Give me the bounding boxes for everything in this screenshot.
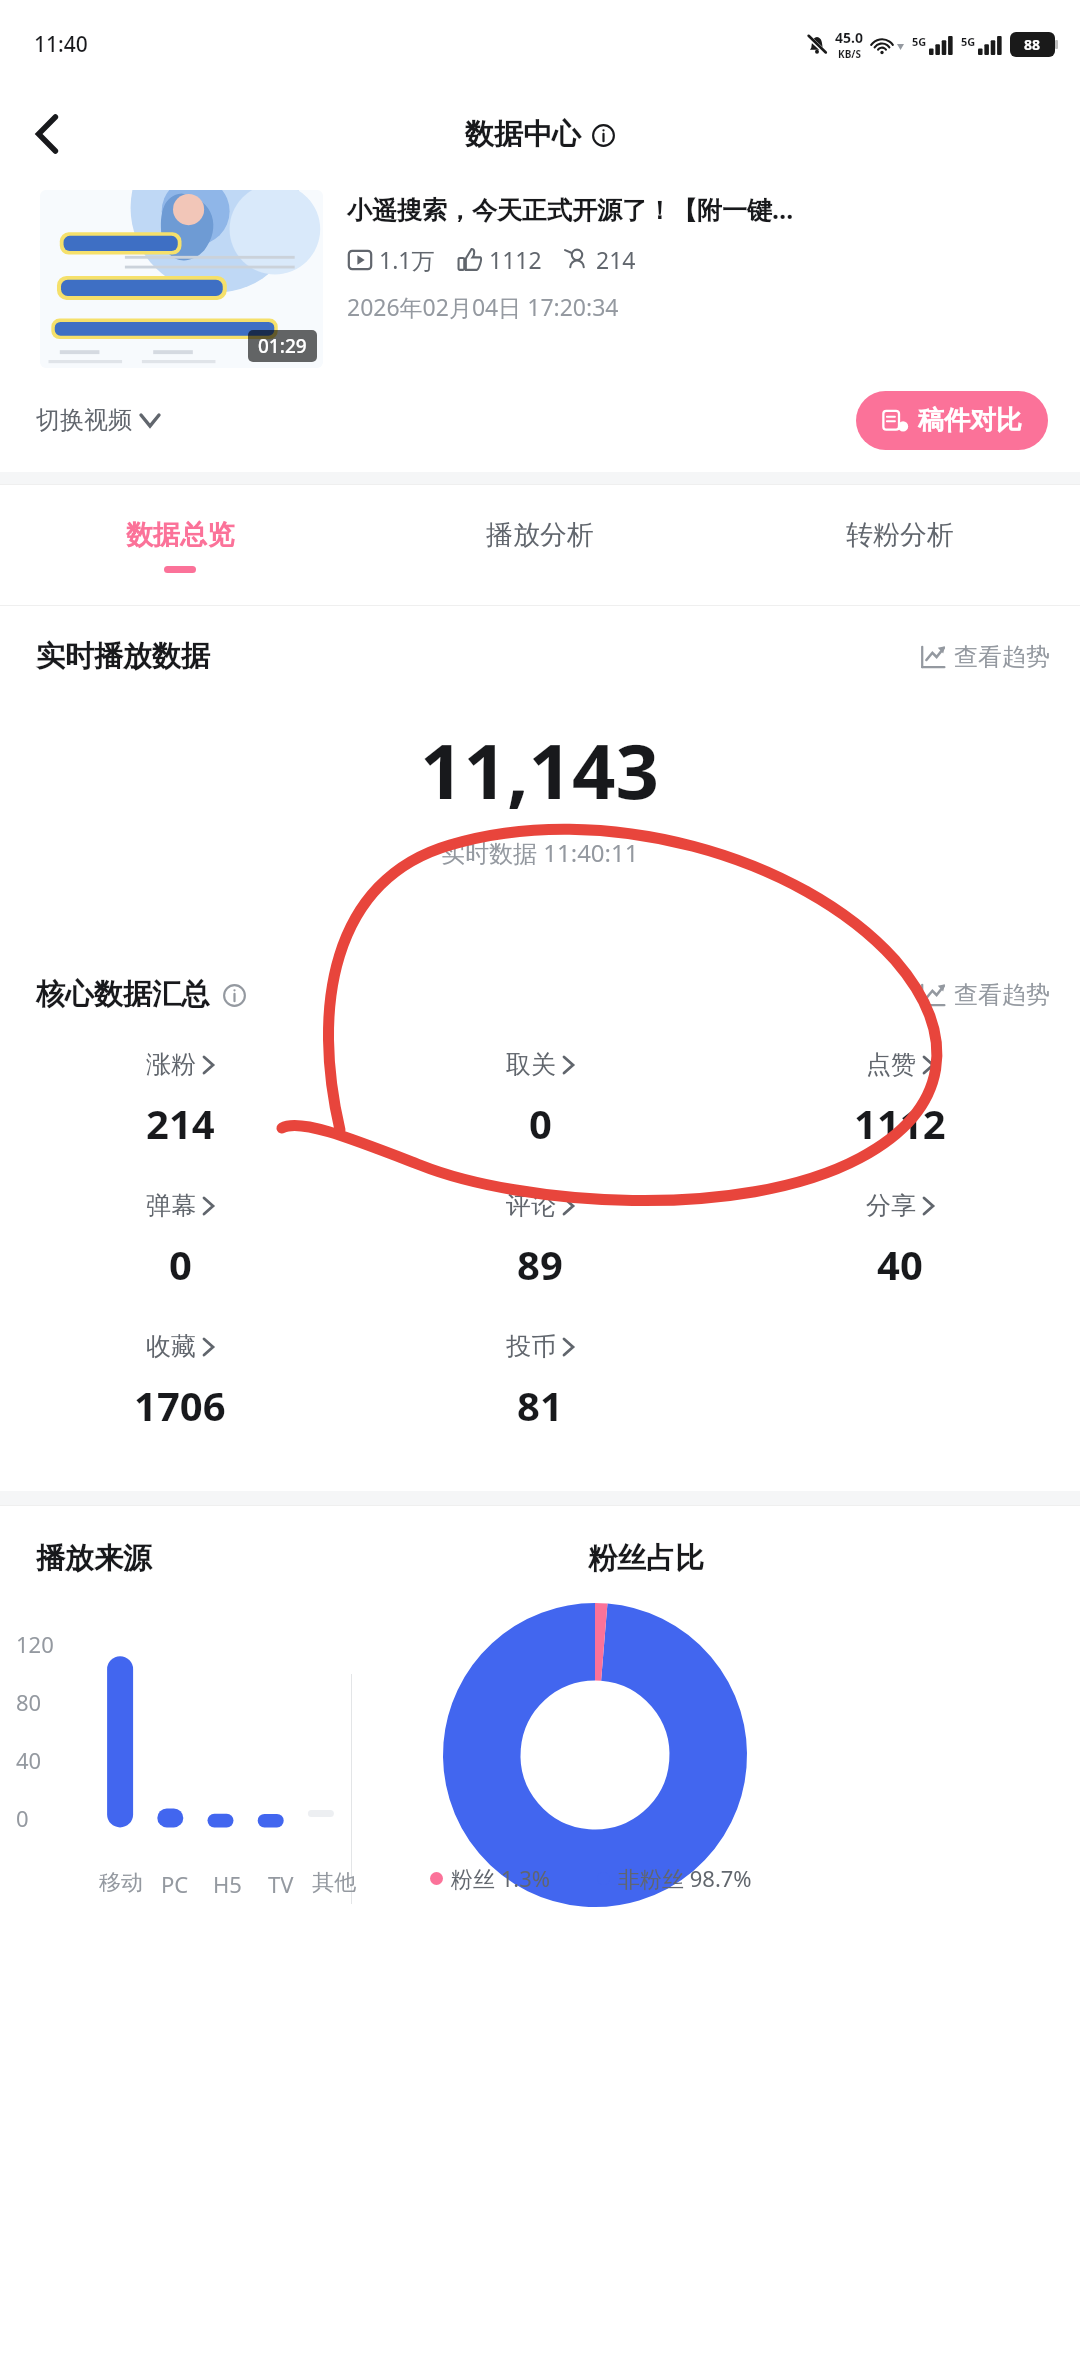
- staticText: 收藏: [146, 1331, 196, 1362]
- staticText: 数据中心: [465, 116, 581, 153]
- staticText: 1706: [134, 1378, 226, 1432]
- staticText: 稿件对比: [918, 404, 1022, 437]
- staticText: 转粉分析: [846, 518, 954, 552]
- staticText: 89: [517, 1237, 563, 1291]
- staticText: 214: [596, 244, 636, 275]
- staticText: 01:29: [258, 333, 307, 359]
- staticText: PC: [161, 1869, 189, 1899]
- staticText: 点赞: [866, 1049, 916, 1080]
- staticText: 2026年02月04日 17:20:34: [347, 291, 619, 322]
- staticText: 非粉丝 98.7%: [618, 1863, 752, 1893]
- staticText: H5: [213, 1869, 242, 1899]
- button[interactable]: 01:29: [40, 190, 323, 368]
- staticText: 0: [529, 1096, 552, 1150]
- button[interactable]: Info: [590, 122, 616, 148]
- button[interactable]: 查看趋势: [918, 642, 1050, 672]
- staticText: 取关: [506, 1049, 556, 1080]
- staticText: 11,143: [420, 718, 660, 822]
- staticText: 120: [16, 1629, 54, 1659]
- staticText: 播放来源: [36, 1540, 152, 1577]
- button[interactable]: 分享: [720, 1190, 1080, 1291]
- staticText: 粉丝占比: [588, 1540, 704, 1577]
- button[interactable]: 查看趋势: [918, 980, 1050, 1010]
- staticText: 评论: [506, 1190, 556, 1221]
- button[interactable]: 收藏: [0, 1331, 360, 1432]
- staticText: 涨粉: [146, 1049, 196, 1080]
- button[interactable]: 数据总览: [0, 485, 360, 605]
- button[interactable]: 切换视频: [36, 405, 159, 435]
- button[interactable]: 取关: [360, 1049, 720, 1150]
- staticText: 切换视频: [36, 405, 132, 435]
- staticText: 查看趋势: [954, 642, 1050, 672]
- staticText: 81: [517, 1378, 563, 1432]
- staticText: 40: [877, 1237, 923, 1291]
- button[interactable]: 转粉分析: [720, 485, 1080, 605]
- staticText: 核心数据汇总: [36, 976, 210, 1013]
- staticText: 45.0: [835, 28, 863, 47]
- staticText: 1112: [854, 1096, 946, 1150]
- button[interactable]: 说明: [221, 982, 247, 1008]
- staticText: 0: [16, 1803, 29, 1833]
- staticText: 40: [16, 1745, 42, 1775]
- staticText: 实时播放数据: [36, 638, 210, 675]
- button[interactable]: 点赞: [720, 1049, 1080, 1150]
- staticText: 投币: [506, 1331, 556, 1362]
- button[interactable]: 评论: [360, 1190, 720, 1291]
- staticText: 其他: [312, 1869, 356, 1897]
- staticText: 弹幕: [146, 1190, 196, 1221]
- staticText: 粉丝 1.3%: [451, 1863, 551, 1893]
- staticText: 1112: [489, 244, 542, 275]
- staticText: 分享: [866, 1190, 916, 1221]
- button[interactable]: 稿件对比: [856, 391, 1048, 450]
- staticText: 5G: [912, 34, 927, 49]
- staticText: 11:40: [34, 30, 88, 59]
- staticText: 1.1万: [379, 244, 435, 275]
- button[interactable]: 投币: [360, 1331, 720, 1432]
- staticText: 88: [1024, 35, 1041, 54]
- staticText: 实时数据 11:40:11: [441, 836, 639, 869]
- staticText: 查看趋势: [954, 980, 1050, 1010]
- staticText: KB/S: [838, 47, 861, 61]
- button[interactable]: 涨粉: [0, 1049, 360, 1150]
- staticText: TV: [268, 1869, 294, 1899]
- button[interactable]: 播放分析: [360, 485, 720, 605]
- button[interactable]: Back: [18, 105, 76, 163]
- staticText: 0: [169, 1237, 192, 1291]
- staticText: 播放分析: [486, 518, 594, 552]
- staticText: 214: [146, 1096, 215, 1150]
- staticText: 80: [16, 1687, 42, 1717]
- button[interactable]: 弹幕: [0, 1190, 360, 1291]
- staticText: 小遥搜索，今天正式开源了！【附一键…: [347, 192, 794, 226]
- staticText: 移动: [99, 1869, 143, 1897]
- staticText: 5G: [961, 34, 976, 49]
- staticText: 数据总览: [126, 518, 234, 552]
